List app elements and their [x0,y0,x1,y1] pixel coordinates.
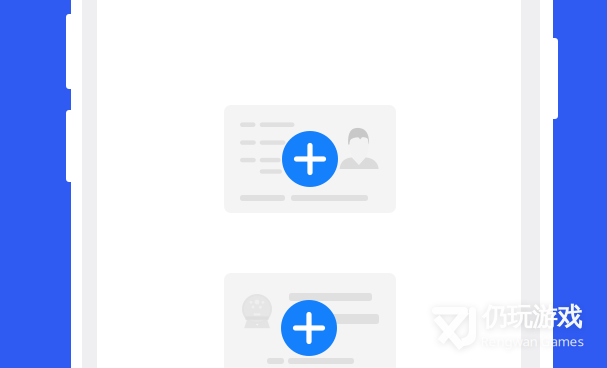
staticText: Rengwan Games [480,332,583,350]
staticText: 仍玩游戏 [482,301,582,332]
button[interactable]: Add [281,300,337,356]
button[interactable]: Add [282,131,338,187]
